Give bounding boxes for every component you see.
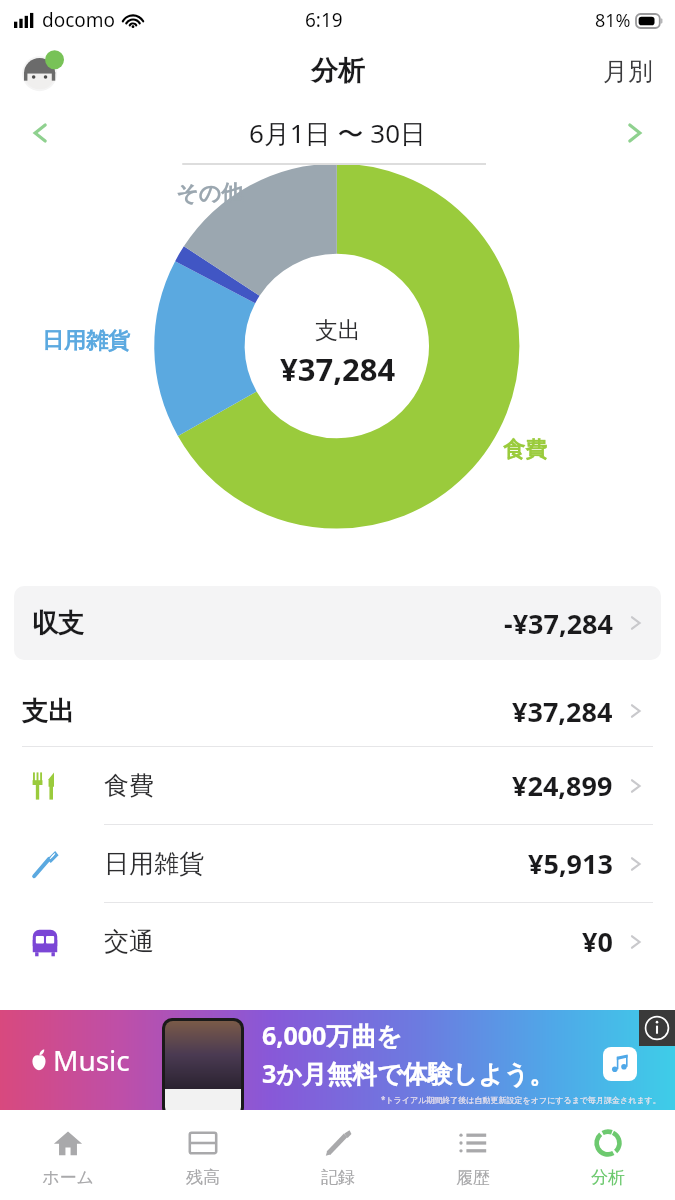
staticText: 3か月無料で体験しよう。	[262, 1056, 555, 1090]
staticText: 支出	[22, 695, 74, 728]
staticText: ¥0	[582, 923, 613, 960]
staticText: 日用雑貨	[42, 327, 130, 355]
staticText: 記録	[321, 1167, 355, 1188]
staticText: 6:19	[305, 7, 343, 33]
staticText: 収支	[32, 607, 84, 640]
button[interactable]: 分析	[540, 1110, 675, 1200]
staticText: 食費	[503, 436, 547, 464]
staticText: ¥37,284	[512, 693, 613, 730]
button[interactable]: ホーム	[0, 1110, 135, 1200]
button[interactable]: 月別	[581, 48, 675, 95]
staticText: 日用雑貨	[104, 848, 204, 879]
staticText: Music	[53, 1041, 130, 1079]
button[interactable]: 食費	[0, 747, 675, 824]
staticText: ホーム	[42, 1167, 94, 1188]
button[interactable]: 残高	[135, 1110, 270, 1200]
button[interactable]: 交通	[0, 903, 675, 980]
button[interactable]: Music	[0, 1010, 675, 1110]
staticText: 81%	[595, 8, 631, 33]
button[interactable]: Profile	[22, 49, 66, 93]
staticText: 6,000万曲を	[262, 1018, 402, 1052]
staticText: 6月1日 〜 30日	[249, 115, 427, 151]
staticText: 残高	[186, 1167, 220, 1188]
staticText: docomo	[42, 7, 116, 33]
button[interactable]: Previous period	[20, 112, 62, 154]
staticText: その他	[176, 180, 244, 208]
button[interactable]: 履歴	[405, 1110, 540, 1200]
button[interactable]: 記録	[270, 1110, 405, 1200]
staticText: 分析	[591, 1167, 625, 1188]
button[interactable]: 日用雑貨	[0, 825, 675, 902]
staticText: 支出	[315, 316, 361, 345]
staticText: 月別	[603, 56, 653, 87]
staticText: -¥37,284	[504, 605, 613, 642]
staticText: ¥24,899	[512, 767, 613, 804]
staticText: 食費	[104, 770, 154, 801]
staticText: *トライアル期間終了後は自動更新設定をオフにするまで毎月課金されます。	[381, 1094, 661, 1105]
staticText: 分析	[311, 54, 365, 88]
staticText: 履歴	[456, 1167, 490, 1188]
staticText: ¥37,284	[280, 348, 396, 390]
button[interactable]: Next period	[613, 112, 655, 154]
button[interactable]: 収支	[14, 586, 661, 660]
staticText: 交通	[104, 926, 154, 957]
staticText: ¥5,913	[528, 845, 613, 882]
button[interactable]: 支出	[0, 676, 675, 746]
button[interactable]: Ad info	[639, 1010, 675, 1046]
